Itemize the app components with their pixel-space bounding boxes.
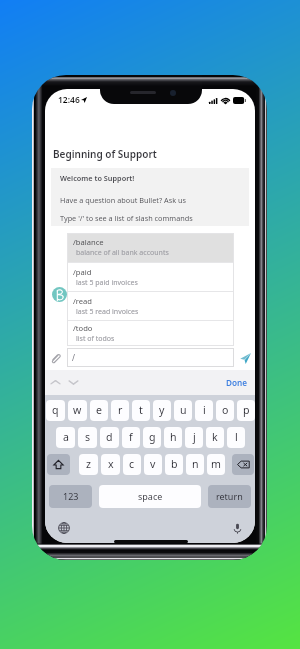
staticText: /todo (73, 323, 93, 333)
staticText: last 5 paid invoices (76, 278, 138, 288)
button[interactable]: t (132, 400, 150, 421)
staticText: w (73, 403, 82, 417)
button[interactable]: d (100, 427, 119, 448)
button[interactable]: l (227, 427, 245, 448)
staticText: t (139, 403, 143, 417)
staticText: r (118, 403, 123, 417)
staticText: p (243, 403, 250, 417)
staticText: /read (73, 296, 93, 306)
staticText: n (192, 457, 199, 471)
button[interactable]: o (216, 400, 234, 421)
button[interactable]: Send message (238, 351, 252, 365)
button[interactable]: Done (226, 377, 248, 388)
staticText: space (138, 490, 163, 502)
staticText: u (180, 403, 187, 417)
staticText: list of todos (76, 334, 115, 344)
staticText: i (203, 403, 206, 417)
staticText: v (150, 457, 156, 471)
staticText: 123 (63, 490, 79, 502)
button[interactable]: n (186, 454, 204, 475)
staticText: last 5 read invoices (76, 307, 139, 317)
staticText: / (72, 352, 75, 363)
button[interactable]: u (174, 400, 192, 421)
staticText: f (129, 430, 133, 444)
staticText: Welcome to Support! (60, 173, 135, 183)
button[interactable]: i (195, 400, 213, 421)
button[interactable]: c (123, 454, 141, 475)
button[interactable]: b (165, 454, 183, 475)
button[interactable]: m (207, 454, 225, 475)
staticText: return (216, 490, 243, 502)
staticText: y (159, 403, 165, 417)
staticText: Beginning of Support (53, 147, 157, 161)
button[interactable]: Dictate (230, 521, 244, 535)
button[interactable]: /todo (67, 321, 234, 346)
button[interactable]: j (185, 427, 203, 448)
staticText: q (52, 403, 59, 417)
button[interactable]: r (111, 400, 129, 421)
staticText: /paid (73, 267, 92, 277)
button[interactable]: h (164, 427, 182, 448)
staticText: o (222, 403, 229, 417)
staticText: g (149, 430, 156, 444)
staticText: j (193, 430, 196, 444)
button[interactable]: /paid (67, 263, 234, 291)
staticText: a (63, 430, 69, 444)
button[interactable]: Change keyboard language (57, 521, 71, 535)
staticText: c (129, 457, 135, 471)
button[interactable]: /read (67, 292, 234, 320)
button[interactable]: g (143, 427, 161, 448)
staticText: b (171, 457, 178, 471)
button[interactable]: w (68, 400, 87, 421)
button[interactable]: Backspace (232, 454, 254, 475)
staticText: x (108, 457, 114, 471)
button[interactable]: s (78, 427, 97, 448)
staticText: k (212, 430, 218, 444)
button[interactable]: Attach file (48, 351, 62, 365)
button[interactable]: return (208, 485, 251, 508)
button[interactable]: f (122, 427, 140, 448)
staticText: h (170, 430, 177, 444)
staticText: m (211, 457, 221, 471)
staticText: /balance (73, 237, 104, 247)
staticText: e (96, 403, 102, 417)
staticText: s (85, 430, 91, 444)
button[interactable]: x (101, 454, 120, 475)
button[interactable]: /balance (67, 233, 234, 262)
button[interactable]: y (153, 400, 171, 421)
staticText: Have a question about Bullet? Ask us (60, 195, 186, 205)
staticText: 12:46 (58, 94, 80, 106)
button[interactable]: space (99, 485, 201, 508)
button[interactable]: p (237, 400, 255, 421)
button[interactable]: Bullet avatar (52, 287, 67, 302)
staticText: Type '/' to see a list of slash commands (60, 213, 193, 223)
button[interactable]: e (90, 400, 108, 421)
staticText: balance of all bank accounts (76, 248, 169, 258)
staticText: z (86, 457, 91, 471)
button[interactable]: z (79, 454, 98, 475)
button[interactable]: k (206, 427, 224, 448)
button[interactable]: v (144, 454, 162, 475)
button[interactable]: a (56, 427, 75, 448)
button[interactable]: / (67, 348, 234, 367)
button[interactable]: 123 (49, 485, 92, 508)
button[interactable]: Shift (47, 454, 70, 475)
staticText: d (106, 430, 113, 444)
staticText: l (235, 430, 238, 444)
button[interactable]: Next field (67, 376, 80, 389)
button[interactable]: Previous field (49, 376, 62, 389)
button[interactable]: q (46, 400, 65, 421)
